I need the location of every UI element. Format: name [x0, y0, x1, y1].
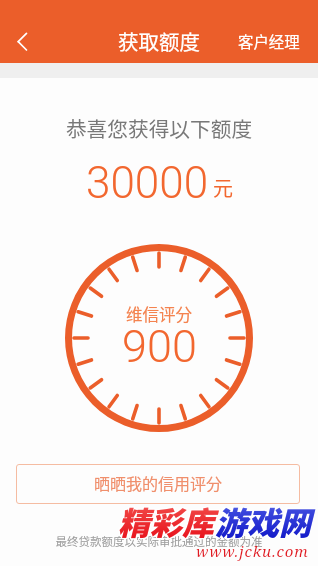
button[interactable]: 晒晒我的信用评分 [16, 464, 300, 504]
staticText: 游戏网 [215, 498, 312, 544]
staticText: 精彩库游戏网 [119, 498, 312, 544]
staticText: 获取额度 [118, 26, 200, 56]
staticText: 维信评分 [126, 302, 192, 326]
staticText: 客户经理 [238, 30, 300, 52]
staticText: www.jcku.com [196, 541, 309, 561]
staticText: 精彩库游戏网 [118, 499, 311, 545]
staticText: 元 [213, 173, 233, 202]
staticText: 恭喜您获得以下额度 [0, 113, 318, 143]
staticText: 精彩库游戏网 [117, 499, 310, 545]
staticText: 精彩库游戏网 [118, 497, 311, 543]
staticText: 30000 [86, 157, 209, 209]
button[interactable]: 客户经理 [224, 26, 318, 58]
staticText: 精彩库游戏网 [117, 497, 310, 543]
staticText: 最终贷款额度以实际审批通过的金额为准 [0, 533, 318, 550]
staticText: 900 [122, 320, 197, 373]
staticText: 精彩库游戏网 [119, 497, 312, 543]
staticText: 精彩库游戏网 [119, 499, 312, 545]
staticText: 晒晒我的信用评分 [94, 471, 223, 494]
button[interactable]: Back [2, 21, 42, 62]
staticText: 精彩库 [118, 498, 215, 544]
staticText: 精彩库游戏网 [117, 498, 310, 544]
